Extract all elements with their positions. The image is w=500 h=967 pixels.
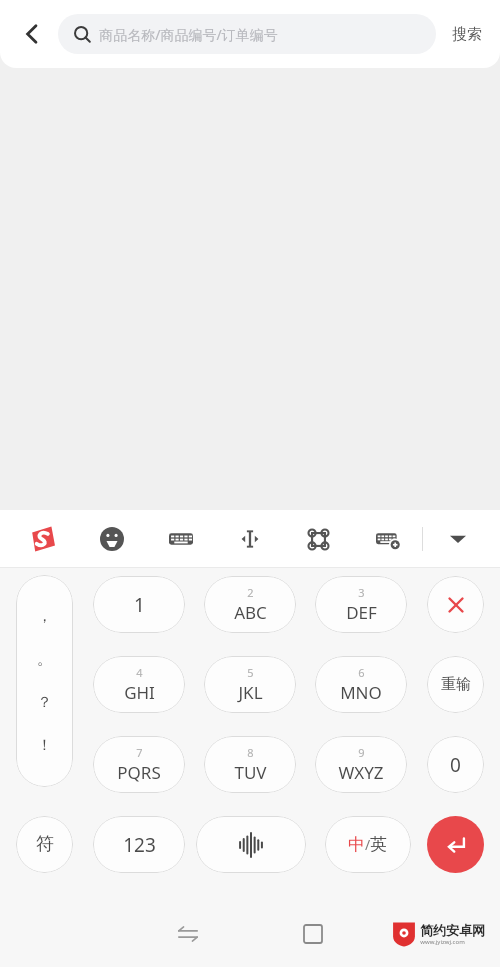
staticText: MNO [340, 681, 382, 704]
button[interactable]: 商品名称/商品编号/订单编号 [58, 14, 436, 54]
button[interactable]: 0 [427, 736, 484, 793]
button[interactable]: 1 [93, 576, 185, 633]
button[interactable]: Home [250, 900, 375, 967]
staticText: 8 [247, 745, 254, 760]
staticText: 重输 [441, 675, 471, 694]
button[interactable]: Enter [427, 816, 484, 873]
staticText: ！ [37, 736, 52, 755]
button[interactable]: Shortcuts [284, 510, 353, 568]
staticText: 0 [450, 752, 461, 778]
button[interactable]: 123 [93, 816, 185, 873]
staticText: 3 [358, 585, 365, 600]
button[interactable]: 3 [315, 576, 407, 633]
button[interactable]: Keyboard layout [146, 510, 215, 568]
button[interactable]: Move cursor [215, 510, 284, 568]
button[interactable]: Hide keyboard [423, 510, 492, 568]
staticText: 7 [136, 745, 143, 760]
staticText: 搜索 [452, 25, 482, 44]
staticText: 123 [123, 832, 156, 858]
button[interactable]: 4 [93, 656, 185, 713]
staticText: WXYZ [338, 761, 384, 784]
staticText: 1 [134, 592, 145, 618]
staticText: 简约安卓网 [420, 922, 485, 938]
button[interactable]: Keyboard settings [353, 510, 422, 568]
button[interactable]: Emoji [77, 510, 146, 568]
button[interactable]: 重输 [427, 656, 484, 713]
staticText: 2 [247, 585, 254, 600]
staticText: 9 [358, 745, 365, 760]
button[interactable]: 符 [16, 816, 73, 873]
button[interactable]: 9 [315, 736, 407, 793]
staticText: JKL [238, 681, 263, 704]
staticText: PQRS [117, 761, 161, 784]
staticText: 6 [358, 665, 365, 680]
button[interactable]: ， [16, 575, 73, 787]
button[interactable]: 中/英 [325, 816, 411, 873]
button[interactable]: 5 [204, 656, 296, 713]
button[interactable]: 搜索 [448, 17, 486, 52]
staticText: 符 [36, 833, 54, 856]
staticText: ？ [37, 693, 52, 712]
button[interactable]: 2 [204, 576, 296, 633]
staticText: 中/英 [348, 834, 388, 855]
button[interactable]: Sogou input [8, 510, 77, 568]
button[interactable]: 7 [93, 736, 185, 793]
staticText: DEF [346, 601, 377, 624]
staticText: ABC [234, 601, 267, 624]
staticText: 商品名称/商品编号/订单编号 [99, 25, 278, 44]
button[interactable]: Voice input [196, 816, 306, 873]
staticText: 。 [37, 650, 52, 669]
staticText: 5 [247, 665, 254, 680]
button[interactable]: Delete [427, 576, 484, 633]
staticText: GHI [124, 681, 155, 704]
staticText: www.jyizwj.com [420, 938, 465, 946]
staticText: 4 [136, 665, 143, 680]
button[interactable]: Back [125, 900, 250, 967]
button[interactable]: Back [10, 12, 54, 56]
button[interactable]: 8 [204, 736, 296, 793]
staticText: TUV [234, 761, 267, 784]
button[interactable]: 6 [315, 656, 407, 713]
staticText: ， [37, 607, 52, 626]
